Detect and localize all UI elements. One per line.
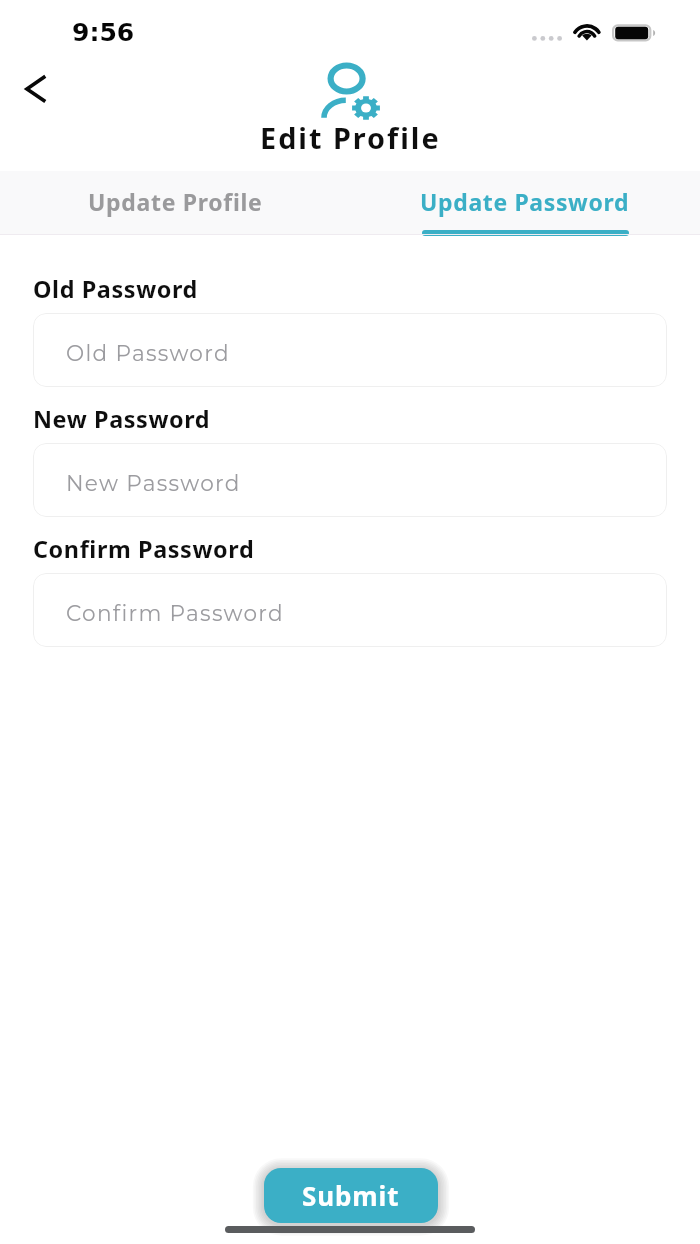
staticText: Confirm Password [66,600,284,626]
staticText: 9:56 [72,18,135,47]
button[interactable]: Old Password [33,313,667,387]
staticText: Submit [302,1178,400,1213]
button[interactable]: Confirm Password [33,573,667,647]
button[interactable]: Back [10,63,62,115]
staticText: Edit Profile [260,118,441,157]
staticText: New Password [33,403,211,435]
staticText: Update Password [420,186,630,217]
staticText: Old Password [66,340,230,366]
staticText: Old Password [33,273,198,305]
button[interactable]: Update Password [350,171,700,234]
button[interactable]: Update Profile [0,171,350,234]
button[interactable]: New Password [33,443,667,517]
staticText: Confirm Password [33,533,255,565]
button[interactable]: Submit [264,1168,438,1223]
staticText: Update Profile [88,186,263,217]
staticText: New Password [66,470,241,496]
